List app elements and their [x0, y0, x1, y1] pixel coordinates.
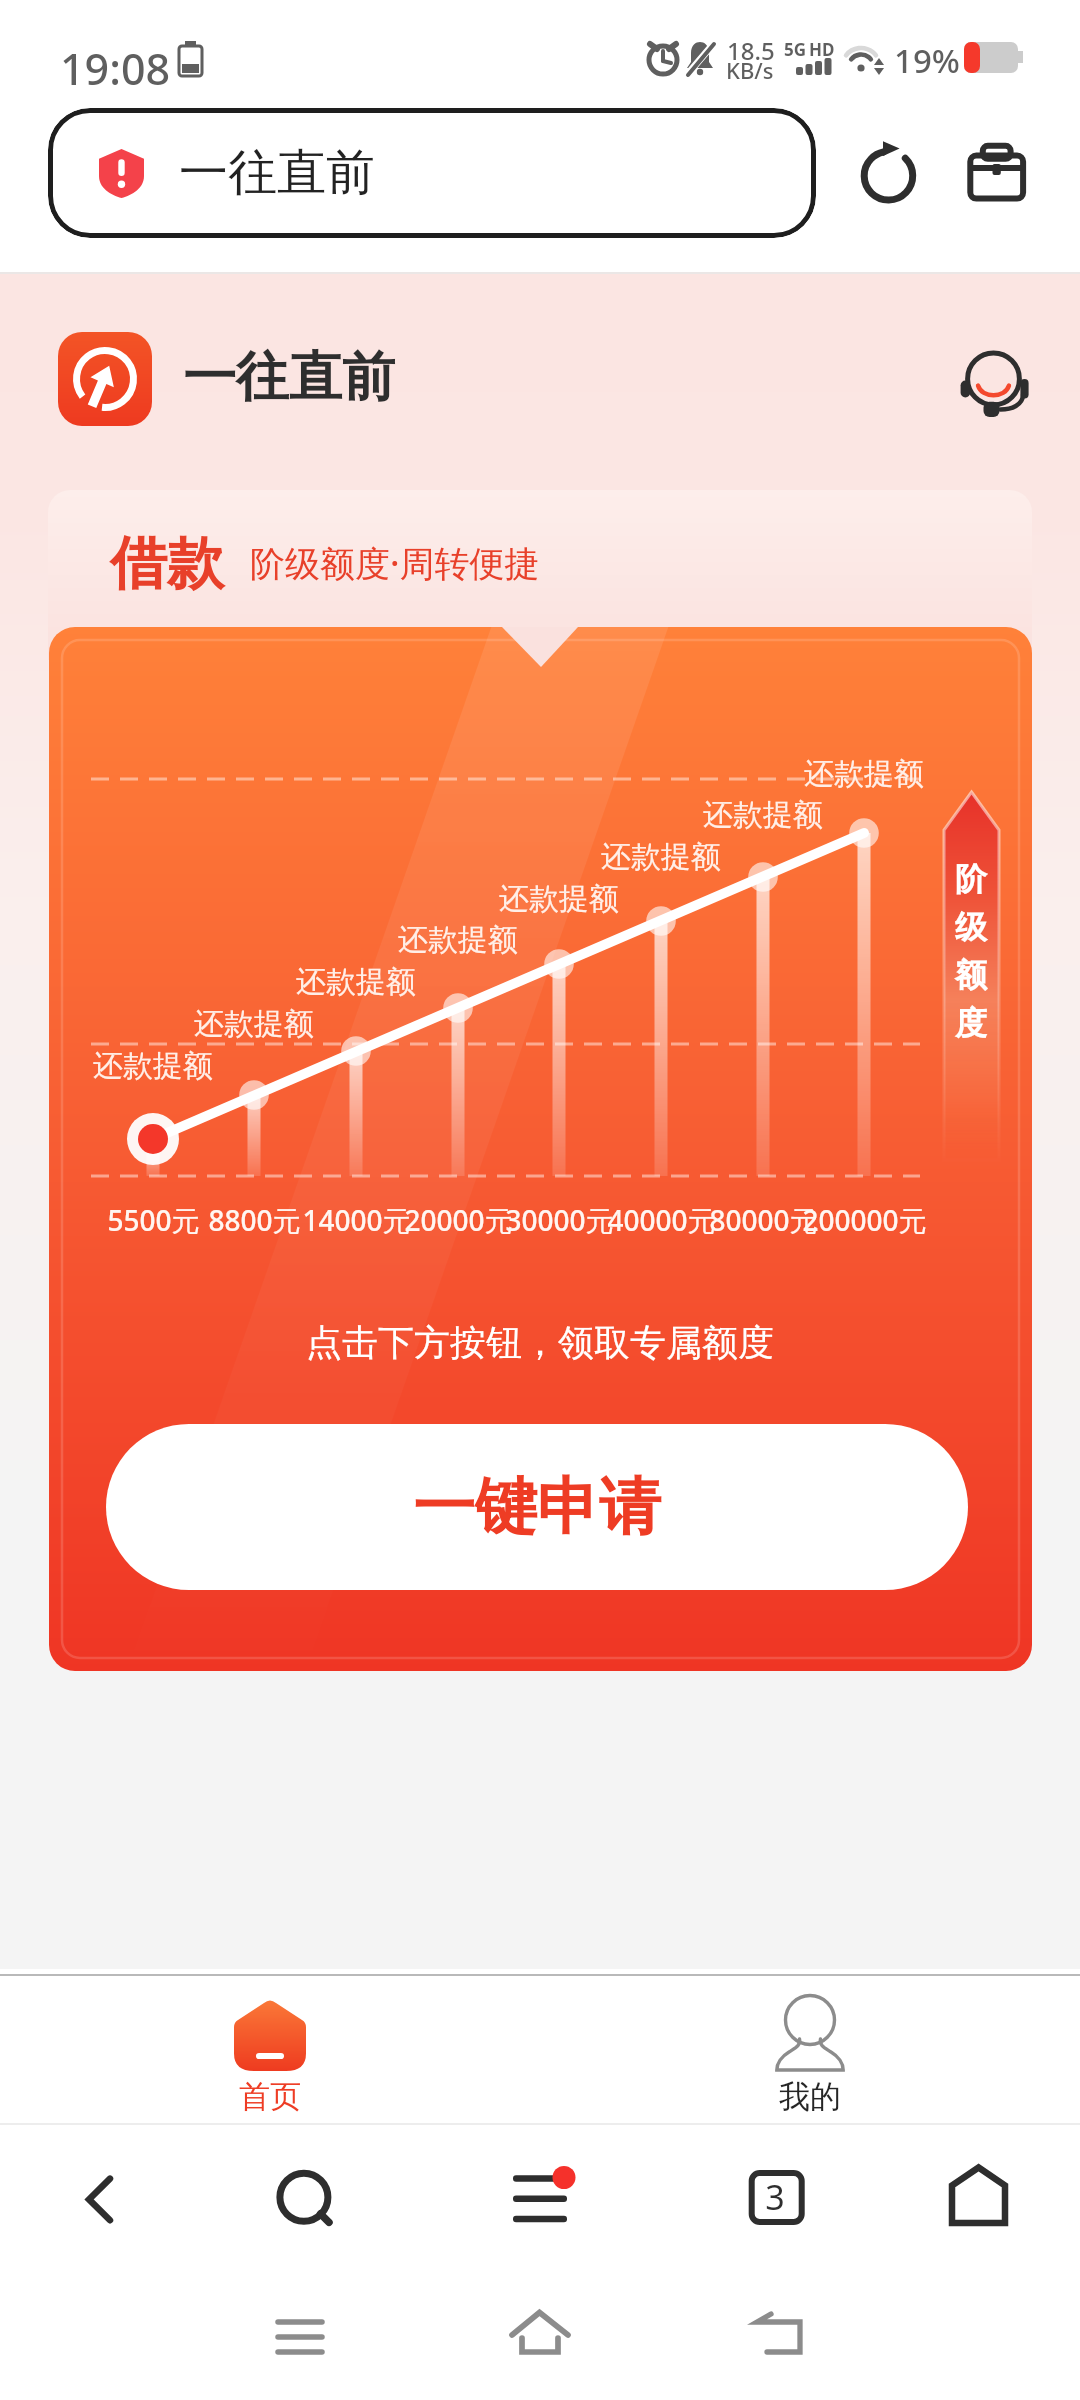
staticText: 8800元 [208, 1201, 301, 1239]
staticText: 14000元 [302, 1201, 411, 1239]
button[interactable]: Search [244, 2136, 364, 2256]
staticText: 一往直前 [183, 344, 395, 411]
staticText: 还款提额 [296, 963, 416, 1001]
button[interactable]: Back [40, 2136, 160, 2256]
button[interactable]: 一往直前 [48, 108, 816, 238]
button[interactable]: Recent apps [230, 2290, 370, 2400]
button[interactable]: 我的 [690, 1972, 930, 2128]
button[interactable] [49, 627, 1032, 1671]
staticText: 级 [955, 907, 987, 947]
button[interactable]: Home [918, 2136, 1038, 2256]
staticText: KB/s [726, 55, 774, 85]
staticText: 点击下方按钮，领取专属额度 [306, 1320, 774, 1365]
staticText: 一往直前 [179, 142, 375, 204]
staticText: 80000元 [709, 1201, 818, 1239]
staticText: 40000元 [607, 1201, 716, 1239]
staticText: 还款提额 [499, 880, 619, 918]
staticText: 首页 [239, 2077, 301, 2116]
staticText: 20000元 [404, 1201, 513, 1239]
staticText: 还款提额 [601, 838, 721, 876]
staticText: 一键申请 [413, 1468, 661, 1546]
button[interactable]: Home [470, 2290, 610, 2400]
button[interactable]: Tabs [716, 2136, 836, 2256]
staticText: 5G [784, 38, 807, 61]
button[interactable]: 首页 [150, 1972, 390, 2128]
staticText: 30000元 [505, 1201, 614, 1239]
staticText: 5500元 [107, 1201, 200, 1239]
staticText: 200000元 [802, 1201, 927, 1239]
button[interactable]: Back [710, 2290, 850, 2400]
button[interactable]: Menu [480, 2136, 600, 2256]
staticText: HD [809, 38, 835, 61]
button[interactable]: Refresh [836, 122, 940, 226]
staticText: 还款提额 [194, 1005, 314, 1043]
staticText: 度 [955, 1003, 987, 1043]
button[interactable]: 一键申请 [106, 1424, 968, 1590]
staticText: 阶级额度·周转便捷 [250, 539, 540, 587]
staticText: 还款提额 [804, 755, 924, 793]
staticText: 阶 [955, 859, 987, 899]
staticText: 额 [955, 955, 987, 995]
staticText: 还款提额 [703, 796, 823, 834]
staticText: 我的 [779, 2077, 841, 2116]
staticText: 19% [894, 38, 960, 83]
staticText: 还款提额 [398, 921, 518, 959]
staticText: 借款 [110, 528, 224, 600]
staticText: 19:08 [60, 39, 171, 98]
button[interactable] [58, 332, 152, 426]
button[interactable]: Tools [945, 122, 1049, 226]
button[interactable]: Customer service [948, 330, 1040, 424]
staticText: 还款提额 [93, 1047, 213, 1085]
staticText: 18.5 [727, 34, 775, 67]
staticText: 3 [765, 2174, 785, 2220]
